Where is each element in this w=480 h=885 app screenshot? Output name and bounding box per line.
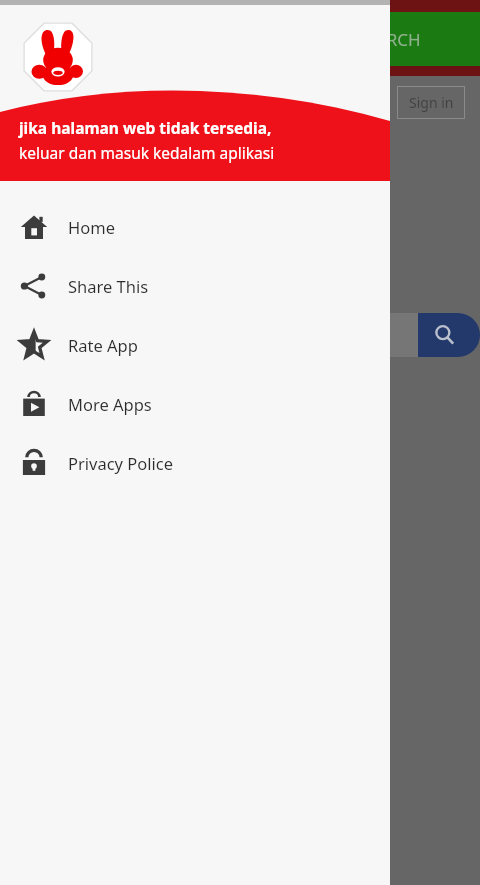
button[interactable]: Privacy Police (0, 433, 390, 492)
staticText: Rate App (68, 334, 138, 356)
button[interactable]: Search (418, 313, 480, 357)
button[interactable]: Share This (0, 256, 390, 315)
button[interactable]: Home (0, 197, 390, 256)
staticText: More Apps (68, 393, 152, 415)
staticText: Share This (68, 275, 149, 297)
staticText: keluar dan masuk kedalam aplikasi (19, 142, 275, 163)
staticText: Privacy Police (68, 452, 174, 474)
button[interactable]: SEARCH (297, 12, 480, 66)
staticText: Home (68, 216, 115, 238)
staticText: Sign in (409, 93, 454, 112)
button[interactable]: More Apps (0, 374, 390, 433)
staticText: SEARCH (357, 28, 421, 51)
button[interactable]: Rate App (0, 315, 390, 374)
staticText: jika halaman web tidak tersedia, (19, 117, 272, 138)
button[interactable]: Sign in (397, 86, 465, 119)
